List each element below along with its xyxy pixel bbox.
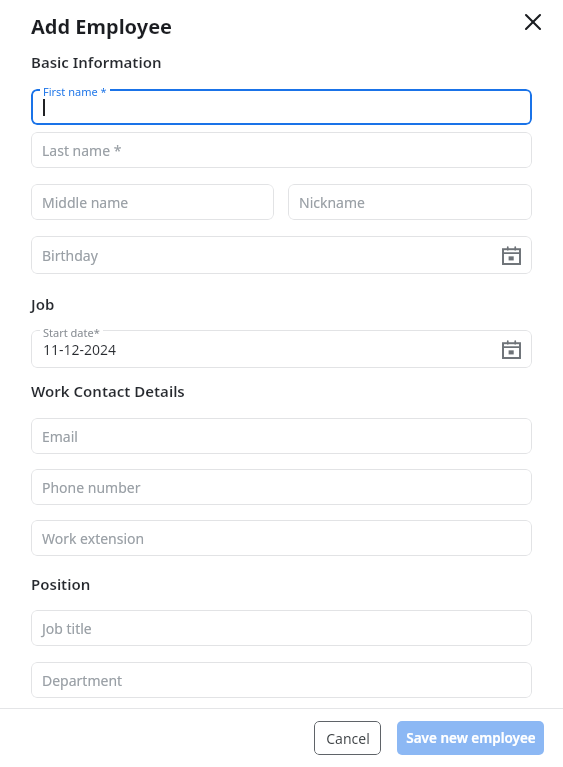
staticText: Work extension (42, 529, 145, 548)
staticText: First name * (43, 84, 107, 99)
staticText: Email (42, 427, 78, 446)
staticText: Birthday (42, 246, 98, 265)
button[interactable]: Close (519, 8, 547, 36)
staticText: Save new employee (406, 729, 536, 747)
button[interactable]: Last name * (31, 132, 532, 168)
staticText: Cancel (326, 729, 370, 748)
staticText: Add Employee (31, 13, 173, 40)
button[interactable]: Work extension (31, 520, 532, 556)
staticText: Job (31, 294, 55, 314)
staticText: Work Contact Details (31, 381, 185, 401)
staticText: 11-12-2024 (43, 340, 117, 359)
button[interactable]: Cancel (314, 721, 381, 755)
staticText: Start date* (43, 325, 100, 340)
staticText: Middle name (42, 193, 129, 212)
staticText: Department (42, 671, 123, 690)
staticText: Phone number (42, 478, 141, 497)
staticText: Nickname (299, 193, 365, 212)
button[interactable]: Nickname (288, 184, 532, 220)
button[interactable]: 11-12-2024 (31, 330, 532, 368)
staticText: Basic Information (31, 52, 162, 72)
button[interactable]: Email (31, 418, 532, 454)
staticText: Job title (42, 619, 92, 638)
button[interactable]: Phone number (31, 469, 532, 505)
button[interactable]: Middle name (31, 184, 274, 220)
staticText: Position (31, 574, 91, 594)
staticText: Last name * (42, 141, 122, 160)
button[interactable]: Save new employee (397, 721, 544, 755)
button[interactable]: Department (31, 662, 532, 698)
button[interactable]: Birthday (31, 236, 532, 274)
button[interactable] (31, 89, 532, 125)
button[interactable]: Job title (31, 610, 532, 646)
